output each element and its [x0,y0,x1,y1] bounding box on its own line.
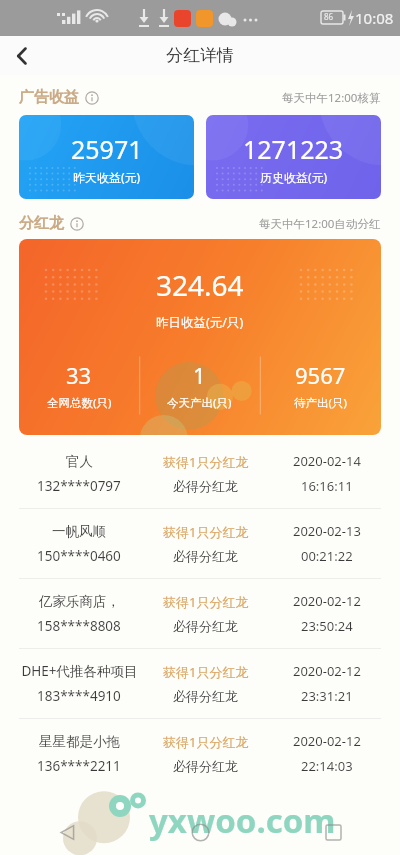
staticText: DHE+代推各种项目 [21,662,138,680]
button[interactable]: Recents [267,809,400,855]
staticText: 25971 [71,132,143,166]
staticText: 136****2211 [37,757,121,775]
staticText: 1 [193,360,206,390]
staticText: yxwoo.com [149,798,336,843]
staticText: 2020-02-12 [293,592,361,610]
staticText: 分红详情 [166,45,234,66]
staticText: 86 [324,11,334,22]
staticText: 全网总数(只) [47,395,112,411]
staticText: 23:31:21 [301,687,353,705]
staticText: 2020-02-12 [293,662,361,680]
button[interactable]: Info [85,91,99,105]
staticText: 23:50:24 [301,617,353,635]
staticText: 昨天收益(元) [73,169,141,185]
staticText: 获得1只分红龙 [163,523,249,541]
staticText: 2020-02-13 [293,522,361,540]
staticText: 必得分红龙 [173,548,238,564]
button[interactable]: 星星都是小拖 [0,719,400,788]
button[interactable]: 亿家乐商店， [0,579,400,648]
staticText: 22:14:03 [301,757,353,775]
staticText: 一帆风顺 [52,523,106,540]
staticText: 00:21:22 [301,547,353,565]
staticText: 16:16:11 [301,477,353,495]
staticText: 10:08 [355,8,394,28]
staticText: 亿家乐商店， [39,593,120,610]
button[interactable]: 25971 [19,115,194,199]
staticText: 132****0797 [37,477,121,495]
staticText: 150****0460 [37,547,121,565]
button[interactable]: Info [70,217,84,231]
staticText: 获得1只分红龙 [163,453,249,471]
staticText: 昨日收益(元/只) [156,314,244,331]
staticText: 分红龙 [19,214,64,233]
staticText: 获得1只分红龙 [163,663,249,681]
staticText: 今天产出(只) [167,395,232,411]
button[interactable]: DHE+代推各种项目 [0,649,400,718]
staticText: 183****4910 [37,687,121,705]
staticText: 必得分红龙 [173,688,238,704]
staticText: 2020-02-14 [293,452,361,470]
staticText: 每天中午12:00核算 [282,90,381,106]
staticText: 必得分红龙 [173,478,238,494]
staticText: 2020-02-12 [293,732,361,750]
staticText: 广告收益 [19,88,79,107]
staticText: 历史收益(元) [260,169,328,185]
button[interactable]: Back [0,809,134,855]
button[interactable]: 1271223 [206,115,381,199]
staticText: 33 [66,360,92,390]
staticText: 324.64 [156,266,244,304]
staticText: 1271223 [243,132,344,166]
staticText: 158****8808 [37,617,121,635]
button[interactable]: 324.64 [19,239,381,435]
staticText: 9567 [295,360,346,390]
staticText: 获得1只分红龙 [163,733,249,751]
staticText: 获得1只分红龙 [163,593,249,611]
button[interactable]: 一帆风顺 [0,509,400,578]
staticText: 待产出(只) [294,395,347,411]
staticText: 必得分红龙 [173,758,238,774]
staticText: 星星都是小拖 [39,733,120,750]
staticText: 每天中午12:00自动分红 [259,216,381,232]
button[interactable]: Back [0,36,44,75]
button[interactable]: 官人 [0,439,400,508]
staticText: 必得分红龙 [173,618,238,634]
staticText: 官人 [66,453,93,470]
button[interactable]: Home [134,809,267,855]
